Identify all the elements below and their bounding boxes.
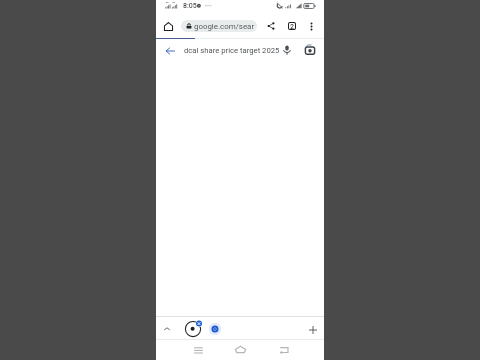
button[interactable]: dcal share price target 2025 [180, 40, 278, 60]
button[interactable]: Home [159, 17, 177, 35]
button[interactable]: Back [161, 42, 178, 59]
button[interactable]: Back [274, 341, 294, 359]
button[interactable]: google.com/sear [181, 20, 257, 32]
button[interactable]: Add [305, 322, 321, 338]
button[interactable]: More options [303, 18, 319, 34]
button[interactable]: Voice search [279, 42, 295, 58]
staticText: google.com/sear [194, 22, 255, 31]
staticText: 2 [290, 23, 294, 29]
button[interactable]: Sticker [183, 319, 203, 339]
staticText: 8:05 [183, 2, 197, 10]
button[interactable]: Share [263, 18, 279, 34]
button[interactable]: Google Lens [302, 42, 318, 58]
staticText: dcal share price target 2025 [184, 46, 280, 55]
button[interactable]: Recents [188, 341, 208, 359]
button[interactable]: Search sticker [207, 321, 223, 337]
button[interactable]: Expand [159, 321, 175, 337]
button[interactable]: Home [230, 340, 250, 358]
button[interactable]: Tabs [284, 18, 300, 34]
